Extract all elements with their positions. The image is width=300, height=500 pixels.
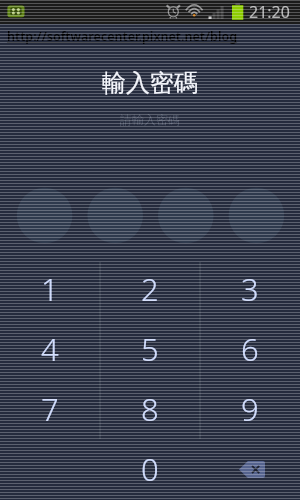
staticText: 4 [41, 328, 59, 370]
button[interactable]: 1 [0, 259, 100, 319]
button[interactable]: Backspace [200, 439, 300, 499]
button[interactable]: 8 [100, 379, 200, 439]
button[interactable]: 3 [200, 259, 300, 319]
staticText: http://softwarecenter.pixnet.net/blog [7, 28, 238, 45]
staticText: 7 [41, 388, 59, 430]
staticText: 8 [141, 388, 159, 430]
button[interactable] [0, 439, 100, 499]
staticText: 21:20 [249, 1, 290, 23]
staticText: 請輸入密碼 [120, 112, 180, 127]
staticText: 3 [241, 268, 259, 310]
staticText: 6 [241, 328, 259, 370]
button[interactable]: 7 [0, 379, 100, 439]
button[interactable]: 6 [200, 319, 300, 379]
staticText: 0 [141, 448, 159, 490]
button[interactable]: 5 [100, 319, 200, 379]
staticText: 9 [241, 388, 259, 430]
button[interactable]: 4 [0, 319, 100, 379]
staticText: 5 [141, 328, 159, 370]
staticText: 輸入密碼 [102, 68, 198, 98]
staticText: 1 [41, 268, 59, 310]
button[interactable]: 9 [200, 379, 300, 439]
other: Backspace [239, 461, 265, 478]
button[interactable]: 2 [100, 259, 200, 319]
button[interactable]: 0 [100, 439, 200, 499]
staticText: 2 [141, 268, 159, 310]
